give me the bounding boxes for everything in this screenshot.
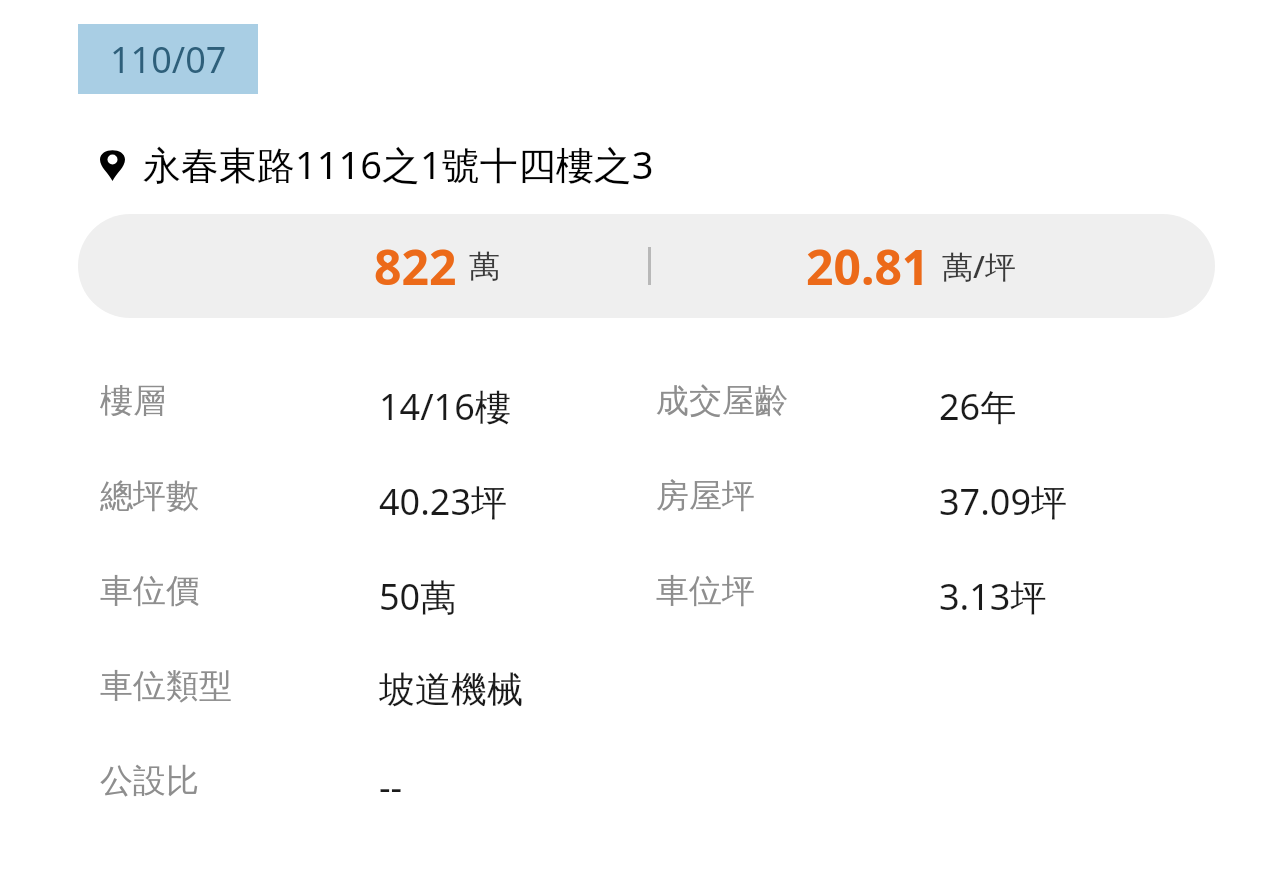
staticText: -- <box>379 762 403 811</box>
staticText: 車位價 <box>100 570 199 612</box>
staticText: 總坪數 <box>100 475 199 517</box>
staticText: 40.23坪 <box>379 477 508 526</box>
staticText: 37.09坪 <box>939 477 1068 526</box>
button[interactable]: 110/07 <box>78 24 258 94</box>
staticText: 萬 <box>469 247 500 286</box>
button[interactable]: 822 <box>78 214 1215 318</box>
staticText: 萬/坪 <box>942 245 1016 287</box>
staticText: 3.13坪 <box>939 572 1047 621</box>
staticText: 成交屋齡 <box>656 380 788 422</box>
staticText: 樓層 <box>100 380 166 422</box>
staticText: 110/07 <box>110 35 227 84</box>
staticText: 坡道機械 <box>379 667 523 712</box>
staticText: 822 <box>374 234 457 299</box>
other: Location <box>100 147 125 181</box>
staticText: 26年 <box>939 382 1017 431</box>
staticText: 車位坪 <box>656 570 755 612</box>
staticText: 14/16樓 <box>379 382 511 431</box>
staticText: 房屋坪 <box>656 475 755 517</box>
staticText: 20.81 <box>806 234 930 299</box>
staticText: 車位類型 <box>100 665 232 707</box>
staticText: 50萬 <box>379 572 457 621</box>
button[interactable]: Location <box>100 138 654 190</box>
staticText: 公設比 <box>100 760 199 802</box>
staticText: 永春東路1116之1號十四樓之3 <box>143 138 654 190</box>
